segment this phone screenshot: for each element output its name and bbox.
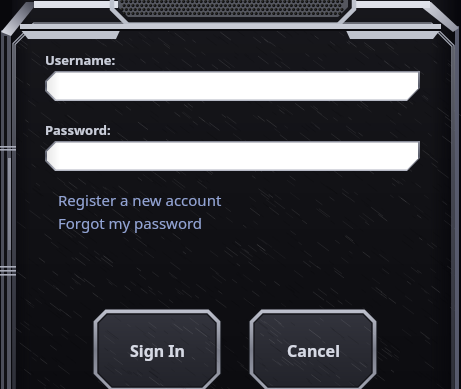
button[interactable]: Username input: [45, 71, 420, 101]
button[interactable]: Password input: [45, 141, 420, 171]
button[interactable]: Register a new account: [58, 190, 222, 210]
button[interactable]: Forgot my password: [58, 213, 203, 233]
staticText: Username:: [45, 51, 116, 69]
staticText: Register a new account: [58, 190, 222, 210]
staticText: Sign In: [130, 340, 185, 362]
staticText: Password:: [45, 121, 111, 139]
button[interactable]: Sign In: [92, 308, 222, 389]
staticText: Forgot my password: [58, 213, 203, 233]
staticText: Cancel: [287, 340, 340, 362]
button[interactable]: Cancel: [248, 308, 378, 389]
